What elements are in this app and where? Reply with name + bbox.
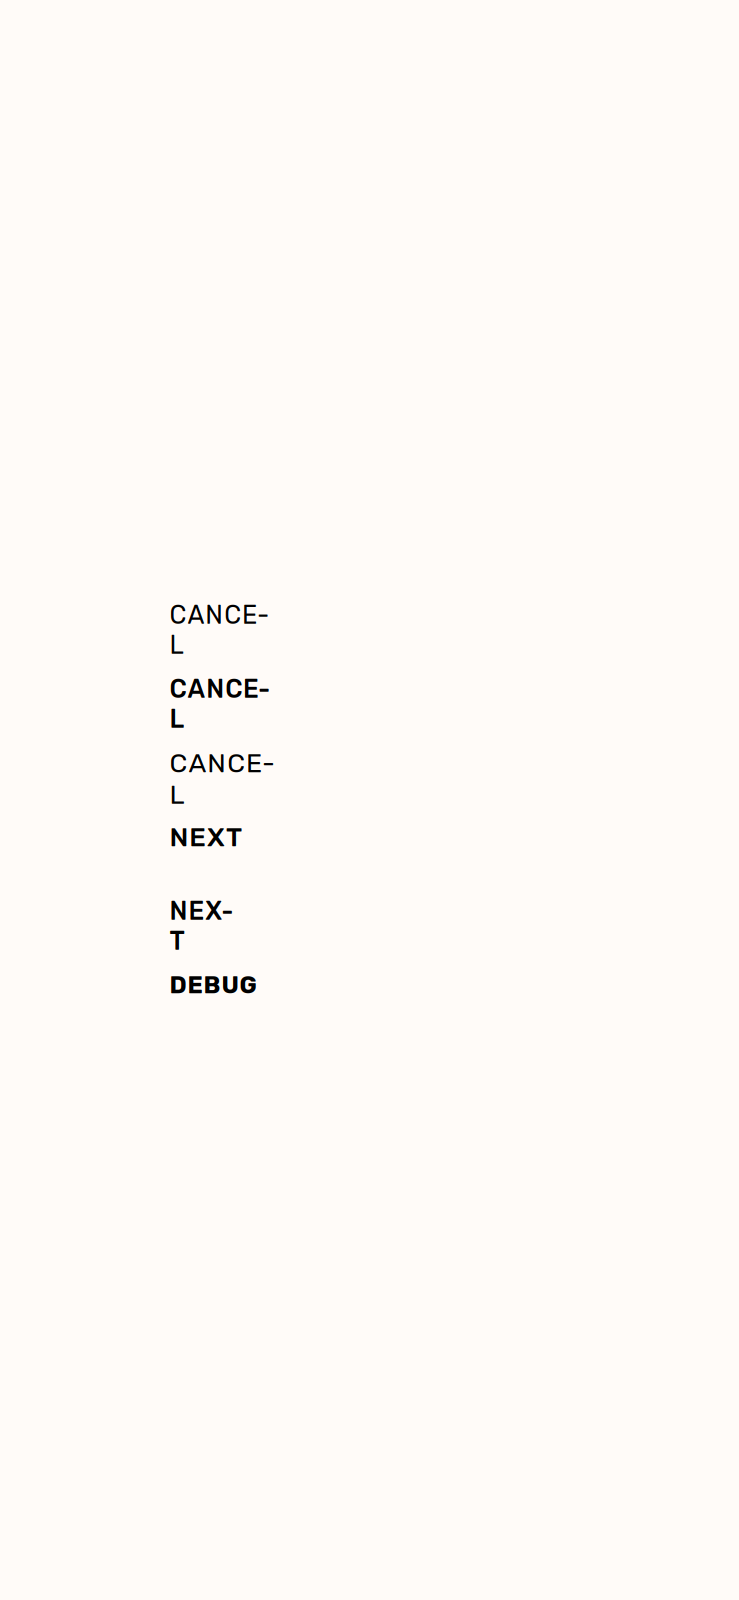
staticText: CANCEL xyxy=(169,674,275,704)
staticText: NEXT xyxy=(169,821,242,853)
staticText: CANCEL xyxy=(169,600,272,630)
staticText: NEXT xyxy=(169,896,238,926)
staticText: DEBUG xyxy=(169,971,256,999)
staticText: CANCEL xyxy=(169,747,278,779)
